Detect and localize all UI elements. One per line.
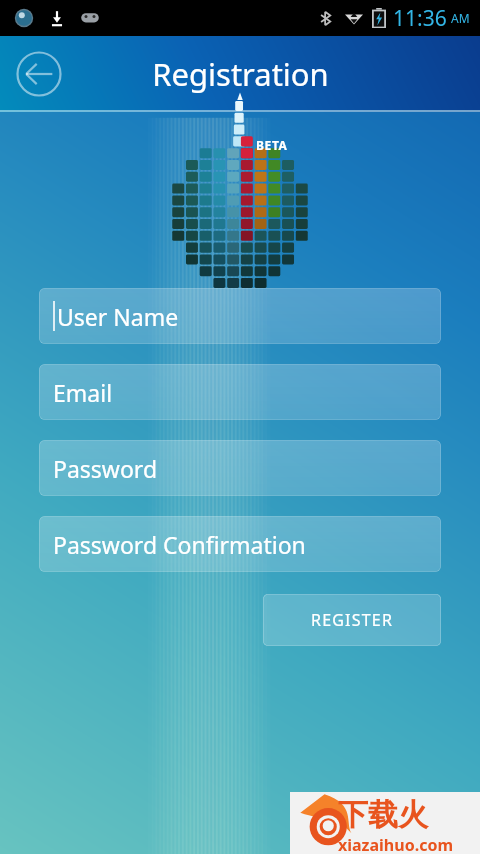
staticText: Password xyxy=(53,453,158,484)
button[interactable]: REGISTER xyxy=(263,594,441,646)
staticText: AM xyxy=(451,10,470,26)
staticText: BETA xyxy=(256,137,288,153)
button[interactable]: User Name xyxy=(39,288,441,344)
staticText: xiazaihuo.com xyxy=(338,834,454,854)
staticText: 下载火 xyxy=(338,796,428,834)
button[interactable]: Password Confirmation xyxy=(39,516,441,572)
staticText: User Name xyxy=(57,301,179,332)
staticText: REGISTER xyxy=(311,609,394,631)
staticText: Registration xyxy=(152,53,329,95)
button[interactable]: Email xyxy=(39,364,441,420)
button[interactable]: Password xyxy=(39,440,441,496)
staticText: 11:36 xyxy=(393,4,447,33)
staticText: Email xyxy=(53,377,113,408)
button[interactable]: Back xyxy=(10,45,68,103)
staticText: Password Confirmation xyxy=(53,529,306,560)
